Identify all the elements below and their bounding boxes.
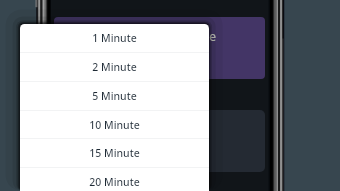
button[interactable]: 1 Minute [20, 24, 209, 52]
button[interactable] [54, 110, 265, 172]
button[interactable]: 10 Minute [20, 110, 209, 139]
staticText: 1 Minute [92, 31, 137, 45]
button[interactable]: 2 Minute [20, 52, 209, 81]
staticText: 10 Minute [89, 118, 140, 132]
staticText: Select Logout Time [54, 28, 216, 44]
button[interactable]: 20 Minute [20, 167, 209, 191]
button[interactable]: Select Logout Time [54, 17, 265, 79]
staticText: 2 Minute [92, 60, 137, 74]
other: Time options [20, 24, 209, 191]
staticText: 5 Minute [92, 89, 137, 103]
button[interactable]: 5 Minute [20, 81, 209, 110]
staticText: 20 Minute [89, 175, 140, 189]
button[interactable]: 15 Minute [20, 138, 209, 167]
staticText: 15 Minute [89, 146, 140, 160]
